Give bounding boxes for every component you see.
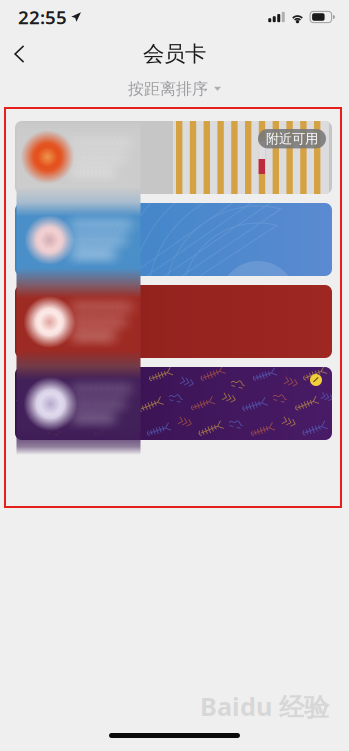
- button[interactable]: 按距离排序: [120, 76, 229, 102]
- button[interactable]: [15, 203, 332, 276]
- staticText: 按距离排序: [128, 79, 208, 99]
- staticText: 22:55: [18, 5, 67, 29]
- button[interactable]: [15, 367, 332, 440]
- staticText: 附近可用: [266, 130, 318, 147]
- button[interactable]: 附近可用: [15, 121, 332, 194]
- button[interactable]: [15, 285, 332, 358]
- staticText: Baidu 经验: [200, 689, 329, 723]
- staticText: 会员卡: [143, 41, 206, 67]
- button[interactable]: Back: [0, 35, 41, 73]
